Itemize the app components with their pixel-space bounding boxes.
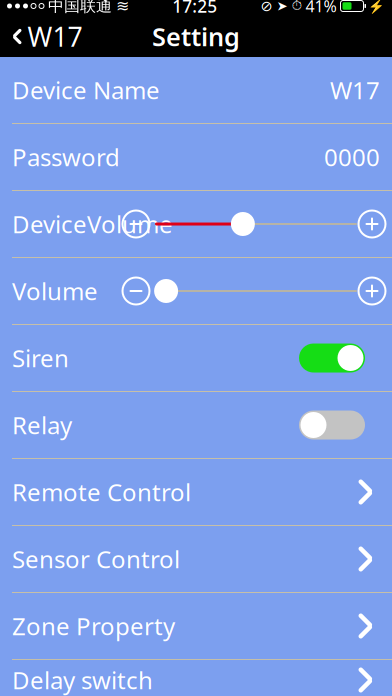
staticText: ≋ (116, 0, 129, 15)
button[interactable]: Device Name (0, 57, 392, 123)
staticText: W17 (27, 19, 82, 54)
staticText: Siren (12, 342, 69, 374)
button[interactable]: Decrease Volume (120, 275, 152, 307)
button[interactable]: Delay switch (0, 660, 392, 696)
button[interactable]: Siren (0, 325, 392, 391)
staticText: 0000 (324, 141, 380, 173)
staticText: Remote Control (12, 476, 191, 508)
staticText: Device Name (12, 74, 160, 106)
staticText: 41% (305, 0, 336, 17)
staticText: Delay switch (12, 664, 153, 696)
button[interactable]: Remote Control (0, 459, 392, 525)
staticText: ⏱ (291, 0, 301, 12)
staticText: 中国联通 (48, 0, 112, 16)
staticText: ➤ (276, 0, 287, 13)
staticText: 17:25 (172, 0, 217, 17)
staticText: Password (12, 141, 120, 173)
button[interactable]: Decrease DeviceVolume (120, 208, 152, 240)
button[interactable]: Relay (0, 392, 392, 458)
button[interactable]: Password (0, 124, 392, 190)
button[interactable]: Increase DeviceVolume (356, 208, 388, 240)
button[interactable]: Zone Property (0, 593, 392, 659)
button[interactable]: Increase Volume (356, 275, 388, 307)
staticText: Setting (152, 20, 240, 53)
button[interactable]: Sensor Control (0, 526, 392, 592)
staticText: ⚡ (368, 0, 385, 14)
staticText: W17 (330, 74, 380, 106)
button[interactable]: W17 (0, 11, 82, 62)
staticText: Sensor Control (12, 543, 180, 575)
staticText: Volume (12, 275, 98, 307)
staticText: Relay (12, 409, 72, 441)
staticText: ⊘ (260, 0, 272, 14)
staticText: Zone Property (12, 610, 175, 642)
staticText: DeviceVolume (12, 208, 173, 240)
